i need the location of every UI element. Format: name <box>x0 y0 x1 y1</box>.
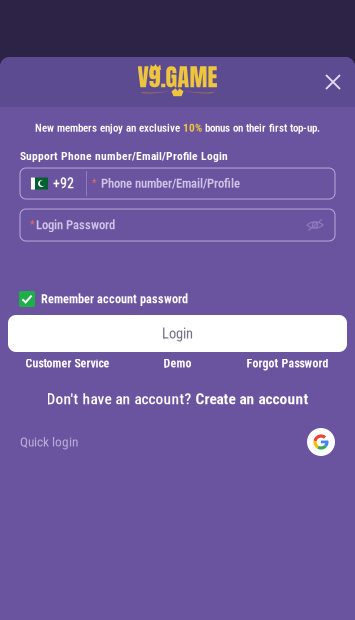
staticText: Login Password <box>36 218 115 232</box>
button[interactable]: Login <box>0 315 355 352</box>
staticText: * <box>30 218 35 230</box>
staticText: New members enjoy an exclusive <box>35 122 183 134</box>
staticText: Demo <box>163 356 191 370</box>
button[interactable]: Close <box>315 64 351 100</box>
staticText: +92 <box>53 175 74 192</box>
staticText: Support Phone number/Email/Profile Login <box>20 149 228 163</box>
staticText: V9.GAME <box>137 59 217 95</box>
staticText: Forgot Password <box>246 356 328 370</box>
staticText: Customer Service <box>25 356 109 370</box>
button[interactable]: Create an account <box>195 390 308 408</box>
staticText: bonus on their first top-up. <box>202 122 320 134</box>
button[interactable]: Sign in with Google <box>307 428 335 456</box>
button[interactable]: Customer Service <box>12 357 122 370</box>
staticText: Quick login <box>20 434 78 450</box>
staticText: Remember account password <box>41 292 188 306</box>
staticText: Login <box>162 325 193 342</box>
staticText: * <box>92 176 97 189</box>
button[interactable]: Remember account password <box>0 291 355 307</box>
button[interactable]: Demo <box>122 357 232 370</box>
staticText: Create an account <box>195 390 308 408</box>
staticText: 10% <box>183 121 202 135</box>
staticText: Phone number/Email/Profile <box>101 176 240 191</box>
staticText: Don't have an account? <box>46 390 195 408</box>
button[interactable]: Forgot Password <box>232 357 342 370</box>
